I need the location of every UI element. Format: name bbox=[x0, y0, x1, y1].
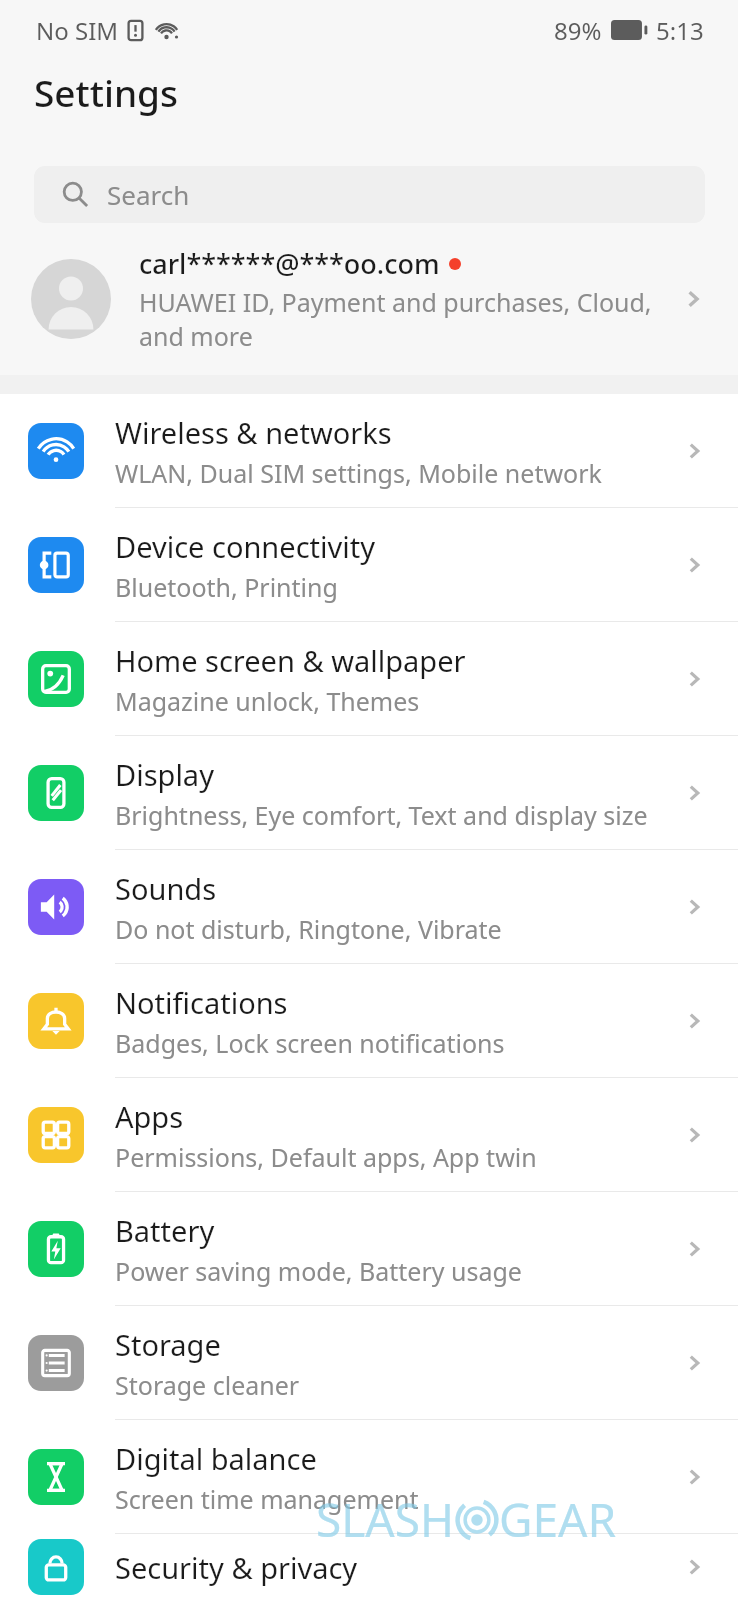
button[interactable]: Sounds bbox=[0, 850, 738, 964]
button[interactable]: Digital balance bbox=[0, 1420, 738, 1534]
staticText: Badges, Lock screen notifications bbox=[115, 1026, 505, 1060]
staticText: 89% bbox=[554, 14, 602, 47]
button[interactable]: Wireless & networks bbox=[0, 394, 738, 508]
staticText: Screen time management bbox=[115, 1482, 419, 1516]
staticText: Bluetooth, Printing bbox=[115, 570, 338, 604]
button[interactable]: Device connectivity bbox=[0, 508, 738, 622]
staticText: Settings bbox=[34, 67, 179, 117]
staticText: Storage cleaner bbox=[115, 1368, 300, 1402]
staticText: Notifications bbox=[115, 983, 288, 1022]
staticText: WLAN, Dual SIM settings, Mobile network bbox=[115, 456, 602, 490]
staticText: Battery bbox=[115, 1211, 215, 1250]
button[interactable]: Notifications bbox=[0, 964, 738, 1078]
staticText: Storage bbox=[115, 1325, 221, 1364]
staticText: Apps bbox=[115, 1097, 184, 1136]
staticText: Display bbox=[115, 755, 214, 794]
staticText: Security & privacy bbox=[115, 1548, 358, 1587]
button[interactable]: Home screen & wallpaper bbox=[0, 622, 738, 736]
staticText: Device connectivity bbox=[115, 527, 375, 566]
staticText: carl******@***oo.com bbox=[139, 245, 440, 282]
staticText: Home screen & wallpaper bbox=[115, 641, 466, 680]
staticText: GEAR bbox=[499, 1488, 617, 1551]
button[interactable]: Apps bbox=[0, 1078, 738, 1192]
staticText: Sounds bbox=[115, 869, 217, 908]
staticText: 5:13 bbox=[656, 14, 704, 47]
button[interactable]: carl******@***oo.com bbox=[0, 223, 738, 375]
staticText: Search bbox=[107, 177, 190, 212]
button[interactable]: Display bbox=[0, 736, 738, 850]
button[interactable]: Storage bbox=[0, 1306, 738, 1420]
staticText: No SIM bbox=[36, 14, 119, 47]
staticText: HUAWEI ID, Payment and purchases, Cloud,… bbox=[139, 285, 652, 354]
staticText: Power saving mode, Battery usage bbox=[115, 1254, 522, 1288]
staticText: Permissions, Default apps, App twin bbox=[115, 1140, 537, 1174]
staticText: Wireless & networks bbox=[115, 413, 392, 452]
staticText: SLASH bbox=[316, 1488, 455, 1551]
button[interactable]: Battery bbox=[0, 1192, 738, 1306]
button[interactable]: Security & privacy bbox=[0, 1534, 738, 1600]
staticText: Digital balance bbox=[115, 1439, 317, 1478]
staticText: Brightness, Eye comfort, Text and displa… bbox=[115, 798, 648, 832]
staticText: Magazine unlock, Themes bbox=[115, 684, 420, 718]
button[interactable]: Search bbox=[34, 166, 705, 223]
staticText: Do not disturb, Ringtone, Vibrate bbox=[115, 912, 502, 946]
